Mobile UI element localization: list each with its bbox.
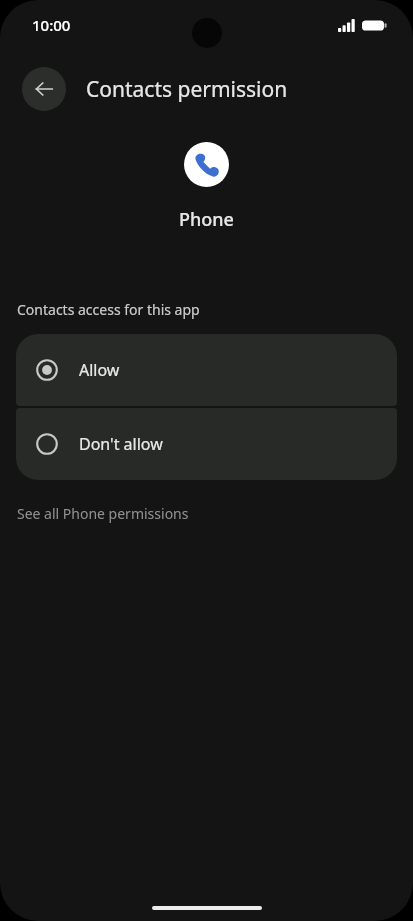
button[interactable]: Allow (16, 334, 397, 406)
staticText: Phone (179, 207, 234, 232)
button[interactable]: Back (22, 67, 66, 111)
staticText: See all Phone permissions (17, 504, 189, 523)
button[interactable]: Don't allow (16, 408, 397, 480)
staticText: 10:00 (32, 15, 71, 35)
staticText: Contacts access for this app (17, 300, 200, 319)
staticText: Contacts permission (86, 75, 288, 104)
button[interactable]: See all Phone permissions (0, 500, 206, 527)
staticText: Don't allow (79, 433, 163, 455)
staticText: Allow (79, 359, 120, 381)
